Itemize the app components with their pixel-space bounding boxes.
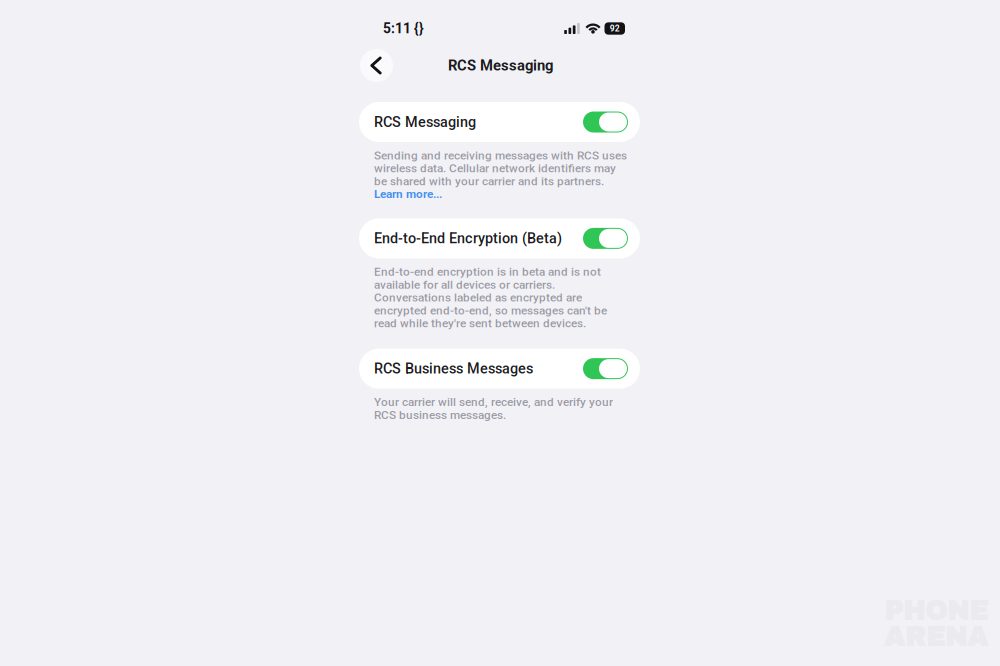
staticText: Your carrier will send, receive, and ver… [374,395,613,409]
staticText: encrypted end-to-end, so messages can't … [374,303,607,317]
staticText: Conversations labeled as encrypted are [374,291,582,304]
staticText: PHONE [884,596,988,625]
staticText: be shared with your carrier and its part… [374,174,604,188]
staticText: End-to-end encryption is in beta and is … [374,265,601,279]
staticText: RCS business messages. [374,408,506,422]
staticText: read while they're sent between devices. [374,316,586,330]
staticText: 5:11 {} [383,20,424,37]
button[interactable]: Back [360,49,393,82]
staticText: available for all devices or carriers. [374,278,555,292]
staticText: End-to-End Encryption (Beta) [374,230,562,247]
staticText: RCS Business Messages [374,360,533,377]
button[interactable]: RCS Messaging [359,102,640,142]
staticText: RCS Messaging [374,114,476,130]
button[interactable]: End-to-End Encryption (Beta) [359,218,640,258]
staticText: ARENA [884,622,988,651]
staticText: Sending and receiving messages with RCS … [374,149,627,162]
staticText: Learn more... [374,187,442,201]
staticText: RCS Messaging [448,57,553,74]
button[interactable]: Learn more... [374,188,442,200]
staticText: wireless data. Cellular network identifi… [374,161,616,175]
staticText: 92 [610,23,620,33]
button[interactable]: RCS Business Messages [359,349,640,389]
